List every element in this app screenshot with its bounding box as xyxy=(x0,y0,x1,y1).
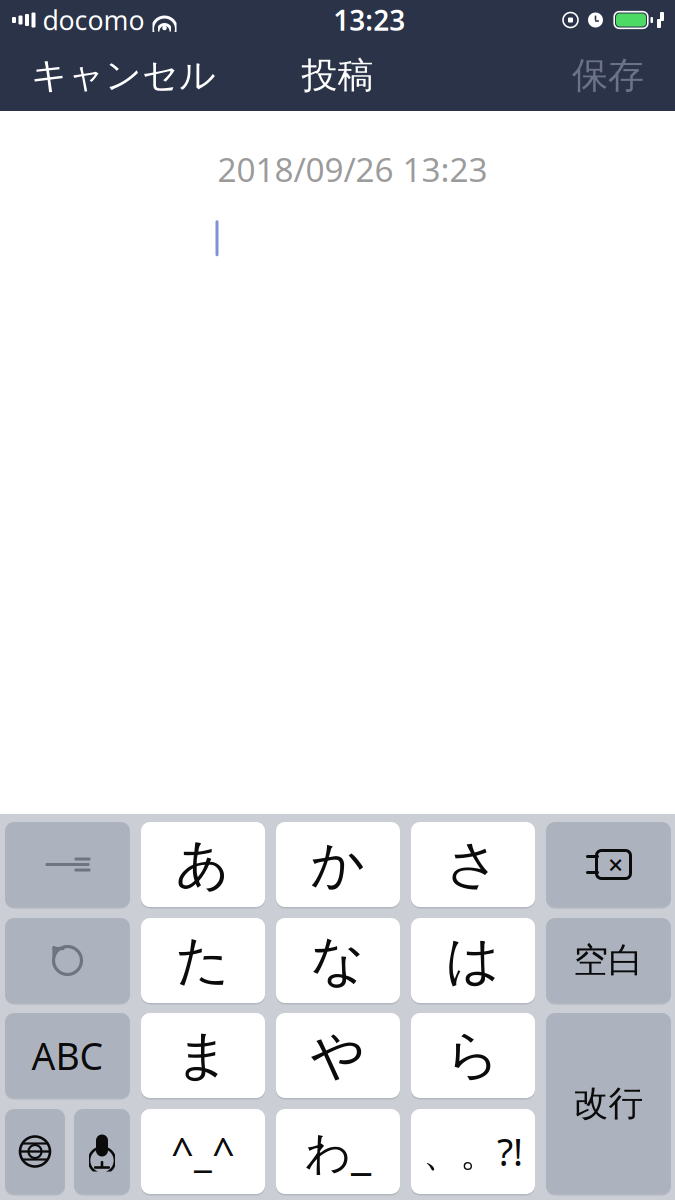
staticText: た xyxy=(175,928,230,993)
staticText: ら xyxy=(445,1023,500,1088)
button[interactable]: わ_ xyxy=(276,1108,400,1195)
button[interactable]: × xyxy=(546,821,671,908)
button[interactable] xyxy=(5,1108,65,1195)
staticText: キャンセル xyxy=(31,53,216,98)
staticText: 保存 xyxy=(572,53,644,98)
staticText: ^_^ xyxy=(171,1125,235,1178)
staticText: 、。?! xyxy=(423,1127,523,1176)
button[interactable]: た xyxy=(141,917,265,1004)
staticText: わ_ xyxy=(305,1121,371,1182)
button[interactable]: ^_^ xyxy=(141,1108,265,1195)
button[interactable] xyxy=(74,1108,130,1195)
staticText: あ xyxy=(175,832,230,897)
button[interactable]: 改行 xyxy=(546,1012,671,1195)
button[interactable]: ら xyxy=(411,1012,535,1099)
staticText: ま xyxy=(175,1023,230,1088)
staticText: ABC xyxy=(31,1031,103,1080)
button[interactable]: 保存 xyxy=(560,43,656,108)
staticText: 空白 xyxy=(573,939,643,982)
staticText: は xyxy=(445,928,500,993)
button[interactable]: は xyxy=(411,917,535,1004)
staticText: 投稿 xyxy=(301,53,373,98)
staticText: 改行 xyxy=(573,1082,643,1125)
staticText: 2018/09/26 13:23 xyxy=(217,147,487,191)
staticText: さ xyxy=(445,832,500,897)
staticText: な xyxy=(310,928,365,993)
staticText: × xyxy=(608,847,623,882)
button[interactable]: や xyxy=(276,1012,400,1099)
button[interactable]: な xyxy=(276,917,400,1004)
button[interactable]: 空白 xyxy=(546,917,671,1004)
button[interactable]: さ xyxy=(411,821,535,908)
staticText: docomo xyxy=(42,2,144,38)
button[interactable]: キャンセル xyxy=(19,43,228,108)
button[interactable] xyxy=(5,917,130,1004)
button[interactable] xyxy=(5,821,130,908)
staticText: か xyxy=(310,832,365,897)
button[interactable]: 、。?! xyxy=(411,1108,535,1195)
button[interactable]: ABC xyxy=(5,1012,130,1099)
button[interactable]: ま xyxy=(141,1012,265,1099)
staticText: や xyxy=(310,1023,365,1088)
staticText: 13:23 xyxy=(333,1,405,39)
button[interactable]: か xyxy=(276,821,400,908)
button[interactable]: あ xyxy=(141,821,265,908)
